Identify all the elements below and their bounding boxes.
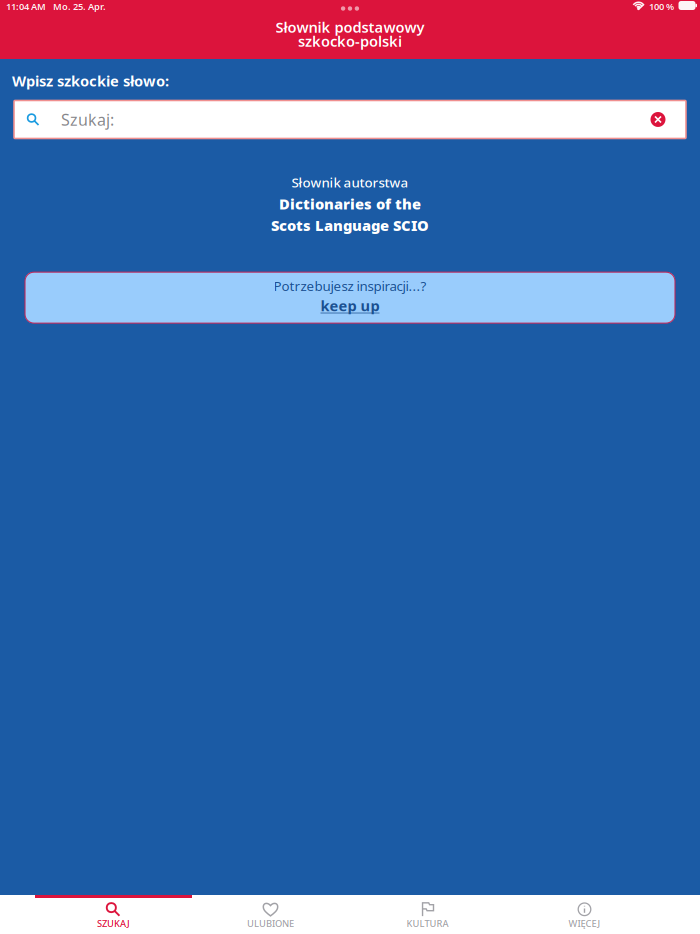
button[interactable]: Potrzebujesz inspiracji...? [25,272,675,323]
staticText: szkocko-polski [298,31,402,51]
staticText: 100 % [649,0,674,13]
button[interactable]: SZUKAJ [35,895,192,934]
staticText: Szukaj: [61,109,114,130]
button[interactable]: WIĘCEJ [506,895,663,934]
staticText: KULTURA [406,917,448,930]
staticText: ULUBIONE [247,917,294,930]
staticText: Dictionaries of the [279,194,421,214]
button[interactable]: ULUBIONE [192,895,349,934]
staticText: SZUKAJ [97,917,130,930]
staticText: 11:04 AM [6,0,46,13]
staticText: keep up [320,296,379,315]
button[interactable]: Wyczyść [643,102,673,136]
staticText: Scots Language SCIO [271,216,429,235]
staticText: Słownik autorstwa [291,173,408,191]
staticText: WIĘCEJ [568,917,600,930]
staticText: Wpisz szkockie słowo: [12,71,169,90]
staticText: Potrzebujesz inspiracji...? [273,277,426,295]
button[interactable]: KULTURA [349,895,506,934]
staticText: Słownik podstawowy [275,17,424,37]
staticText: Mo. 25. Apr. [53,0,106,13]
